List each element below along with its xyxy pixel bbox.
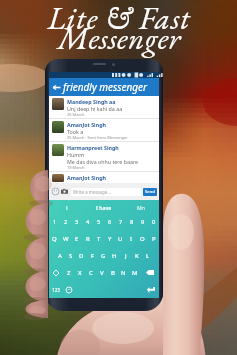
staticText: 25 March [67, 112, 85, 117]
button[interactable]: Enter [142, 281, 159, 298]
staticText: D [79, 252, 84, 260]
button[interactable]: L [142, 247, 153, 264]
button[interactable]: H [109, 247, 120, 264]
button[interactable]: Q [49, 230, 60, 247]
button[interactable]: Z [63, 264, 74, 281]
button[interactable]: M [129, 264, 140, 281]
staticText: Took a [67, 128, 84, 135]
button[interactable]: S [65, 247, 76, 264]
button[interactable]: N [118, 264, 129, 281]
staticText: M [132, 269, 138, 277]
button[interactable]: I have [85, 200, 122, 214]
staticText: 5 [97, 218, 101, 226]
button[interactable]: Y [104, 230, 115, 247]
staticText: Write a message... [73, 189, 111, 195]
staticText: B [111, 269, 115, 277]
staticText: X [78, 269, 82, 277]
button[interactable]: 4 [82, 214, 93, 230]
staticText: A [58, 252, 62, 260]
button[interactable]: D [76, 247, 87, 264]
staticText: O [140, 235, 145, 243]
staticText: Z [67, 269, 71, 277]
staticText: I have [96, 204, 112, 211]
button[interactable]: 7 [115, 214, 126, 230]
staticText: I [130, 235, 133, 243]
staticText: J [125, 252, 127, 260]
button[interactable]: 123 [49, 281, 63, 298]
button[interactable]: V [96, 264, 107, 281]
staticText: Mn [137, 204, 145, 211]
staticText: T [97, 235, 101, 243]
staticText: 0 [152, 218, 156, 226]
button[interactable]: Send [143, 188, 157, 196]
staticText: G [101, 252, 106, 260]
button[interactable]: 2 [60, 214, 71, 230]
button[interactable]: 0 [148, 214, 159, 230]
button[interactable]: AmanJot Singh [49, 172, 159, 183]
button[interactable]: Back [49, 78, 63, 96]
staticText: C [89, 269, 93, 277]
staticText: N [121, 269, 126, 277]
button[interactable]: O [137, 230, 148, 247]
button[interactable]: J [120, 247, 131, 264]
button[interactable]: W [60, 230, 71, 247]
button[interactable]: E [71, 230, 82, 247]
staticText: Harmanpreet Singh [67, 144, 119, 151]
button[interactable]: B [107, 264, 118, 281]
button[interactable]: I [49, 200, 85, 214]
button[interactable]: Camera [60, 187, 69, 196]
button[interactable]: 6 [104, 214, 115, 230]
button[interactable]: G [98, 247, 109, 264]
button[interactable]: X [74, 264, 85, 281]
staticText: 123 [52, 287, 60, 293]
button[interactable]: C [85, 264, 96, 281]
button[interactable]: I [126, 230, 137, 247]
staticText: E [75, 235, 79, 243]
staticText: AmanJot Singh [67, 174, 106, 181]
button[interactable]: Emoji [63, 281, 75, 298]
staticText: R [86, 235, 90, 243]
staticText: H [112, 252, 117, 260]
staticText: V [100, 269, 104, 277]
button[interactable]: Emoji [51, 187, 60, 196]
button[interactable]: 5 [93, 214, 104, 230]
button[interactable]: P [148, 230, 159, 247]
staticText: U [118, 235, 123, 243]
staticText: 9 [141, 218, 145, 226]
staticText: W [63, 235, 69, 243]
button[interactable]: 9 [137, 214, 148, 230]
staticText: friendly messenger [63, 80, 148, 94]
button[interactable]: R [82, 230, 93, 247]
staticText: 4 [86, 218, 90, 226]
staticText: Y [108, 235, 112, 243]
button[interactable]: 8 [126, 214, 137, 230]
staticText: 6 [108, 218, 112, 226]
staticText: Q [52, 235, 57, 243]
button[interactable]: Harmanpreet Singh [49, 142, 159, 172]
button[interactable]: Shift [49, 264, 63, 281]
staticText: 1 [53, 218, 57, 226]
button[interactable]: Mandeep Singh aa [49, 96, 159, 119]
staticText: Mandeep Singh aa [67, 98, 116, 105]
staticText: I [66, 204, 68, 211]
button[interactable]: 3 [71, 214, 82, 230]
button[interactable]: K [131, 247, 142, 264]
staticText: 2 [64, 218, 68, 226]
staticText: Unj deep hi kahi da aa [67, 105, 123, 112]
button[interactable]: AmanJot Singh [49, 119, 159, 142]
staticText: AmanJot Singh [67, 121, 106, 128]
staticText: K [135, 252, 139, 260]
button[interactable]: A [54, 247, 65, 264]
button[interactable]: F [87, 247, 98, 264]
button[interactable]: U [115, 230, 126, 247]
button[interactable]: 1 [49, 214, 60, 230]
staticText: 8 [130, 218, 134, 226]
staticText: 19 March [67, 165, 85, 170]
button[interactable]: Backspace [140, 264, 159, 281]
staticText: 3 [75, 218, 79, 226]
staticText: S [69, 252, 73, 260]
button[interactable]: T [93, 230, 104, 247]
button[interactable]: Mn [122, 200, 159, 214]
button[interactable]: Write a message... [73, 188, 141, 196]
